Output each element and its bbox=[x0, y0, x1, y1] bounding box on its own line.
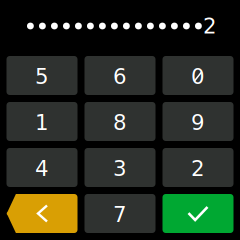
staticText: 2 bbox=[191, 156, 205, 181]
button[interactable]: 4 bbox=[6, 148, 77, 187]
staticText: 5 bbox=[35, 64, 49, 89]
staticText: 8 bbox=[113, 110, 127, 135]
button[interactable]: 1 bbox=[6, 102, 77, 141]
staticText: 2 bbox=[203, 14, 217, 38]
button[interactable]: 9 bbox=[162, 102, 233, 141]
staticText: 1 bbox=[35, 110, 49, 135]
staticText: 0 bbox=[191, 64, 205, 89]
staticText: 9 bbox=[191, 110, 205, 135]
button[interactable]: 7 bbox=[84, 194, 155, 233]
staticText: 7 bbox=[113, 202, 127, 227]
button[interactable]: 8 bbox=[84, 102, 155, 141]
staticText: 6 bbox=[113, 64, 127, 89]
button[interactable]: 0 bbox=[162, 56, 233, 95]
button[interactable]: Delete bbox=[6, 194, 77, 233]
staticText: 3 bbox=[113, 156, 127, 181]
staticText: 4 bbox=[35, 156, 49, 181]
button[interactable]: 6 bbox=[84, 56, 155, 95]
button[interactable]: Confirm bbox=[162, 194, 233, 233]
button[interactable]: 5 bbox=[6, 56, 77, 95]
button[interactable]: 3 bbox=[84, 148, 155, 187]
button[interactable]: 2 bbox=[162, 148, 233, 187]
